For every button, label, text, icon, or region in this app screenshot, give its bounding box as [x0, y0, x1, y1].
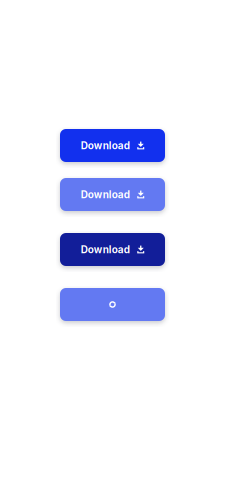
button[interactable]: Loading [60, 288, 165, 321]
button[interactable]: Download [60, 233, 165, 266]
staticText: Download [81, 139, 130, 152]
staticText: Download [81, 188, 130, 201]
staticText: Download [81, 243, 130, 256]
button[interactable]: Download [60, 129, 165, 162]
button[interactable]: Download [60, 178, 165, 211]
